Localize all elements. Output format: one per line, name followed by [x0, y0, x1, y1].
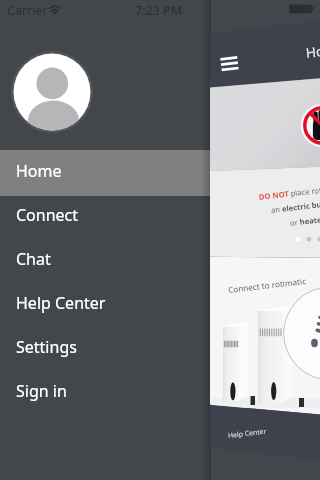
staticText: Home	[305, 40, 320, 62]
staticText: Carrier	[7, 2, 48, 19]
staticText: or heater	[289, 214, 320, 228]
button[interactable]: Help Center	[0, 281, 320, 325]
staticText: Chat	[16, 248, 51, 270]
staticText: Help Center	[16, 292, 106, 314]
staticText: Sign in	[16, 380, 67, 402]
button[interactable]: Settings	[0, 325, 320, 369]
button[interactable]: Sign in	[0, 369, 320, 413]
button[interactable]: Chat	[0, 237, 320, 281]
staticText: Home	[16, 160, 62, 182]
staticText: Connect to rotimatic	[227, 275, 307, 295]
staticText: an electric burn	[270, 198, 320, 215]
staticText: Settings	[16, 336, 77, 358]
staticText: Connect	[16, 204, 79, 226]
staticText: Help Center	[227, 427, 267, 440]
staticText: DO NOT place rotimat	[258, 183, 320, 202]
button[interactable]: Connect	[0, 193, 320, 237]
button[interactable]: Home	[0, 149, 320, 193]
staticText: 7:23 PM	[135, 2, 183, 19]
button[interactable]: Open navigation menu	[220, 56, 239, 71]
